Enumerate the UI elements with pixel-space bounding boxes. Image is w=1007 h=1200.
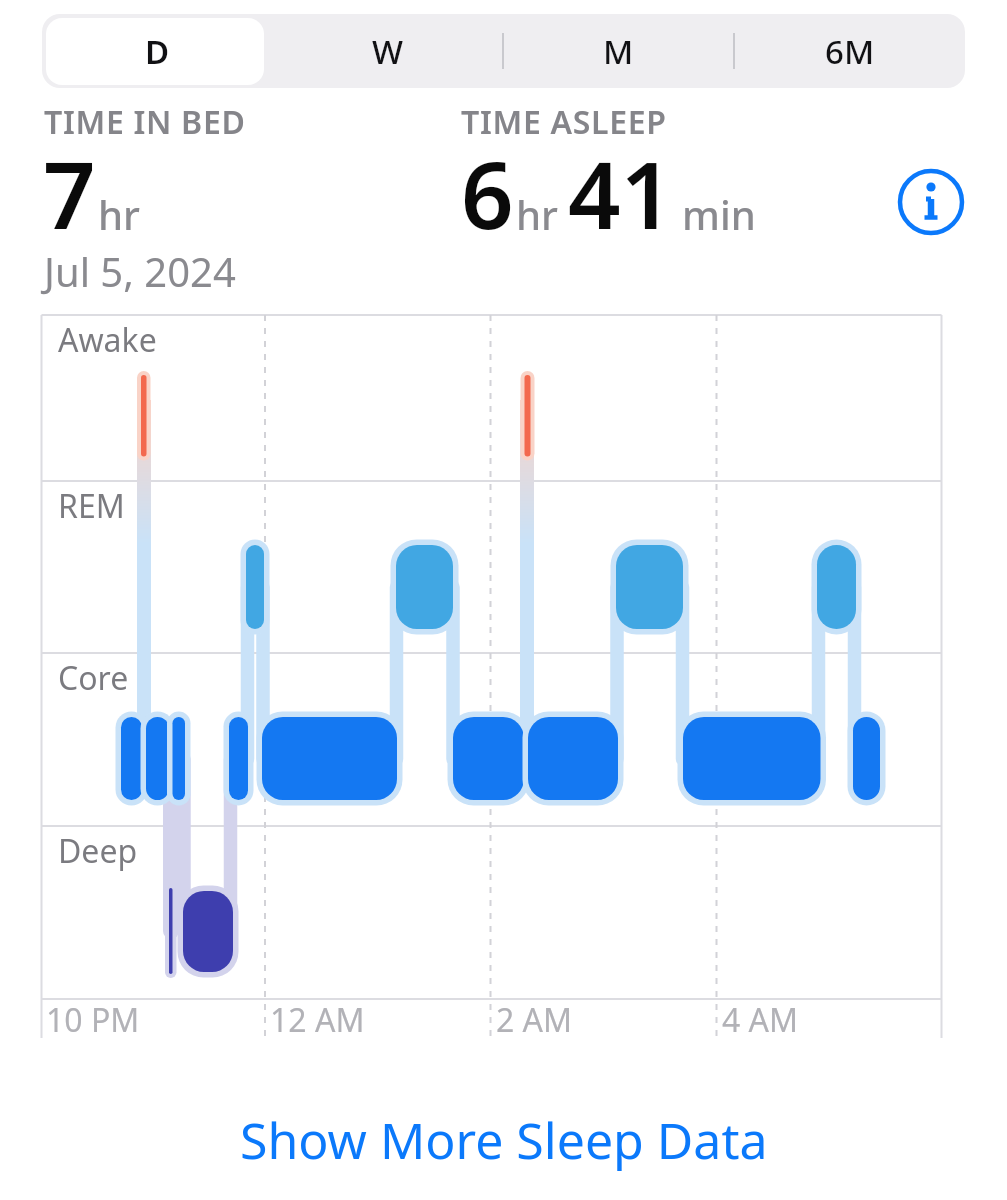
button[interactable]: 6M [734, 14, 965, 88]
staticText: Show More Sleep Data [240, 1106, 768, 1174]
staticText: M [603, 29, 634, 74]
staticText: hr [516, 187, 558, 241]
staticText: 2 AM [496, 998, 573, 1042]
staticText: Awake [58, 318, 157, 362]
staticText: 10 PM [46, 998, 140, 1042]
staticText: 4 AM [722, 998, 799, 1042]
staticText: 7 [43, 131, 96, 256]
staticText: TIME ASLEEP [461, 100, 667, 144]
button[interactable]: Show More Sleep Data [0, 1100, 1007, 1180]
staticText: Jul 5, 2024 [44, 244, 236, 298]
button[interactable]: M [503, 14, 734, 88]
staticText: W [372, 29, 404, 74]
staticText: REM [58, 484, 125, 528]
staticText: 41 [568, 131, 674, 256]
button[interactable] [897, 168, 965, 236]
staticText: min [682, 187, 756, 241]
button[interactable]: W [272, 14, 503, 88]
staticText: hr [98, 187, 140, 241]
staticText: D [145, 29, 170, 74]
staticText: 6M [825, 29, 875, 74]
staticText: 6 [461, 131, 514, 256]
staticText: Core [58, 656, 129, 700]
button[interactable]: D [42, 14, 272, 88]
staticText: 12 AM [270, 998, 365, 1042]
staticText: Deep [58, 829, 138, 873]
staticText: TIME IN BED [44, 100, 246, 144]
